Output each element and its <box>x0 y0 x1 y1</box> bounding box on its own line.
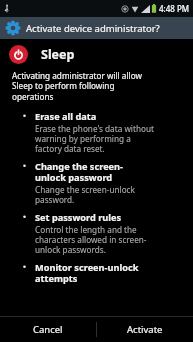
button[interactable]: Cancel <box>0 317 96 342</box>
staticText: Control the length and the characters al… <box>35 224 147 256</box>
staticText: Activate device administrator? <box>26 22 160 35</box>
staticText: Erase all data <box>35 110 97 123</box>
staticText: Activating administrator will allow Slee… <box>12 70 142 103</box>
staticText: Monitor screen-unlock attempts <box>35 261 139 285</box>
staticText: Activate <box>127 323 163 336</box>
staticText: Change the screen-unlock password. <box>35 184 135 206</box>
staticText: Change the screen- unlock password <box>35 160 124 184</box>
staticText: Erase the phone's data without warning b… <box>35 123 154 155</box>
staticText: 4:48 PM <box>159 3 190 14</box>
button[interactable]: Activate <box>97 317 193 342</box>
staticText: Cancel <box>33 323 63 336</box>
staticText: Sleep <box>41 46 75 63</box>
staticText: Set password rules <box>35 211 122 224</box>
